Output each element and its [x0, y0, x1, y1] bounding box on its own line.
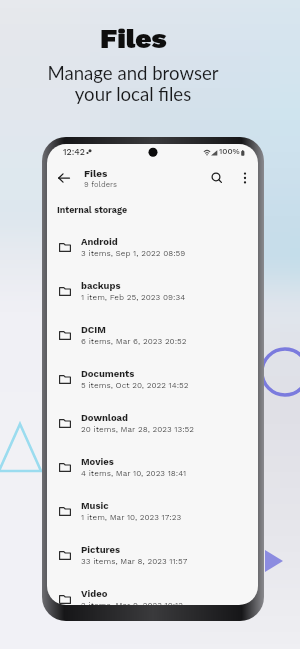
button[interactable]: Music: [47, 489, 258, 533]
staticText: Manage and browser your local files: [47, 62, 219, 105]
staticText: 33 items, Mar 8, 2023 11:57: [81, 556, 188, 566]
staticText: 4 items, Mar 10, 2023 18:41: [81, 468, 187, 478]
staticText: Internal storage: [57, 205, 128, 215]
button[interactable]: Documents: [47, 357, 258, 401]
staticText: Documents: [81, 368, 135, 379]
button[interactable]: Download: [47, 401, 258, 445]
staticText: 1 item, Feb 25, 2023 09:34: [81, 292, 186, 302]
button[interactable]: Android: [47, 225, 258, 269]
staticText: Pictures: [81, 544, 121, 555]
staticText: 2 items, Mar 9, 2023 10:12: [81, 600, 183, 605]
staticText: Movies: [81, 456, 114, 467]
staticText: backups: [81, 280, 121, 291]
button[interactable]: More options: [234, 167, 256, 189]
staticText: 12:42: [63, 147, 85, 157]
staticText: Video: [81, 588, 108, 599]
staticText: DCIM: [81, 324, 106, 335]
staticText: Download: [81, 412, 129, 423]
staticText: Music: [81, 500, 109, 511]
button[interactable]: DCIM: [47, 313, 258, 357]
staticText: 1 item, Mar 10, 2023 17:23: [81, 512, 182, 522]
staticText: 9 folders: [84, 180, 117, 189]
button[interactable]: Search: [206, 167, 228, 189]
staticText: 6 items, Mar 6, 2023 20:52: [81, 336, 187, 346]
staticText: Files: [84, 168, 108, 180]
staticText: 100%: [219, 146, 240, 156]
staticText: Android: [81, 236, 118, 247]
staticText: 5 items, Oct 20, 2022 14:52: [81, 380, 189, 390]
staticText: Files: [100, 22, 167, 55]
button[interactable]: Pictures: [47, 533, 258, 577]
staticText: 20 items, Mar 28, 2023 13:52: [81, 424, 195, 434]
button[interactable]: Movies: [47, 445, 258, 489]
button[interactable]: Back: [53, 167, 75, 189]
staticText: 3 items, Sep 1, 2022 08:59: [81, 248, 186, 258]
button[interactable]: Video: [47, 577, 258, 605]
button[interactable]: backups: [47, 269, 258, 313]
